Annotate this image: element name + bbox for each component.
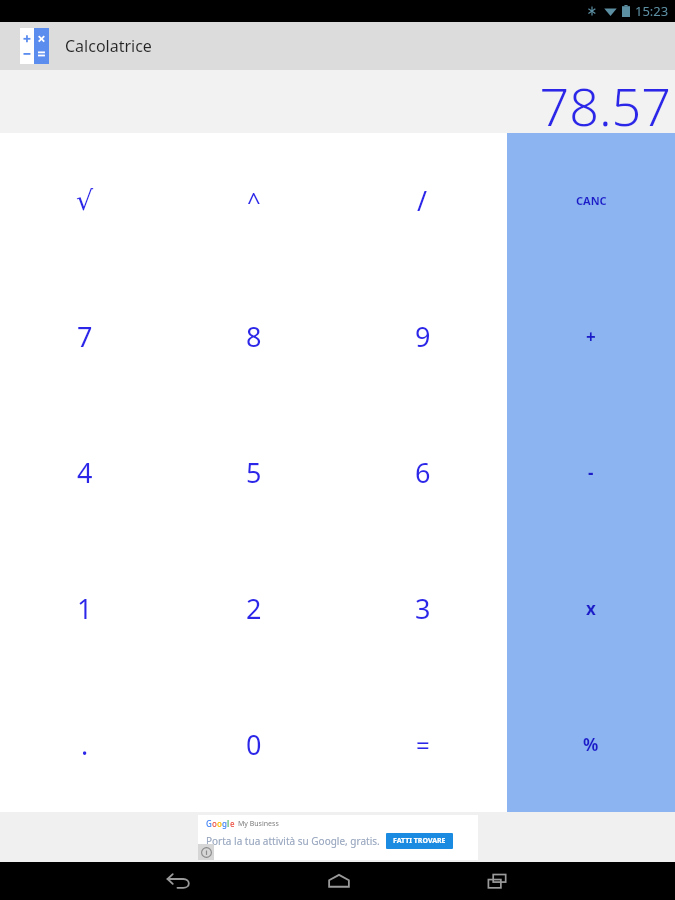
staticText: FATTI TROVARE: [393, 836, 446, 846]
staticText: +: [586, 325, 596, 348]
button[interactable]: G: [198, 815, 478, 860]
staticText: Calcolatrice: [65, 35, 152, 57]
staticText: 3: [415, 590, 431, 627]
button[interactable]: 9: [338, 268, 507, 404]
button[interactable]: 4: [0, 404, 169, 540]
staticText: o: [217, 818, 222, 829]
button[interactable]: Ad info: [198, 844, 214, 860]
button[interactable]: ^: [169, 133, 338, 268]
staticText: 6: [415, 454, 431, 491]
staticText: o: [212, 818, 217, 829]
button[interactable]: 1: [0, 540, 169, 676]
button[interactable]: x: [507, 540, 675, 676]
button[interactable]: +: [507, 268, 675, 404]
button[interactable]: /: [338, 133, 507, 268]
button[interactable]: CANC: [507, 133, 675, 268]
staticText: G: [206, 818, 212, 829]
staticText: x: [586, 597, 596, 620]
button[interactable]: 3: [338, 540, 507, 676]
button[interactable]: 78.57: [0, 70, 675, 133]
button[interactable]: Recent apps: [439, 862, 557, 900]
staticText: 78.57: [539, 70, 671, 133]
staticText: 1: [77, 590, 93, 627]
button[interactable]: 0: [169, 676, 338, 812]
button[interactable]: 6: [338, 404, 507, 540]
button[interactable]: =: [338, 676, 507, 812]
button[interactable]: .: [0, 676, 169, 812]
staticText: 4: [77, 454, 93, 491]
button[interactable]: FATTI TROVARE: [393, 836, 446, 846]
staticText: g: [222, 818, 227, 829]
staticText: 15:23: [635, 2, 669, 20]
staticText: √: [76, 185, 94, 216]
staticText: =: [416, 728, 430, 761]
staticText: .: [81, 726, 89, 763]
staticText: e: [230, 818, 235, 829]
staticText: CANC: [576, 193, 607, 208]
staticText: 2: [246, 590, 262, 627]
staticText: /: [417, 182, 428, 219]
staticText: 9: [415, 318, 431, 355]
staticText: -: [588, 461, 594, 484]
staticText: 8: [246, 318, 262, 355]
staticText: 5: [246, 454, 262, 491]
staticText: 7: [77, 318, 93, 355]
button[interactable]: Back: [119, 862, 238, 900]
staticText: 0: [246, 726, 262, 763]
button[interactable]: %: [507, 676, 675, 812]
button[interactable]: √: [0, 133, 169, 268]
button[interactable]: 2: [169, 540, 338, 676]
button[interactable]: 8: [169, 268, 338, 404]
button[interactable]: 5: [169, 404, 338, 540]
staticText: l: [227, 818, 230, 829]
staticText: %: [583, 733, 599, 756]
other: Calculator icon: [20, 28, 49, 64]
staticText: My Business: [238, 819, 279, 829]
button[interactable]: 7: [0, 268, 169, 404]
staticText: ^: [247, 184, 261, 217]
staticText: Porta la tua attività su Google, gratis.: [206, 834, 380, 848]
button[interactable]: Home: [280, 862, 398, 900]
